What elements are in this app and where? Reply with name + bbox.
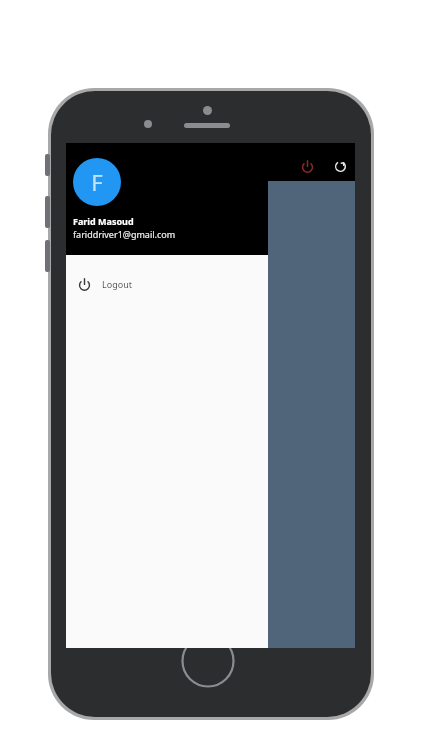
button[interactable]: Refresh: [327, 153, 353, 179]
staticText: Logout: [102, 278, 132, 290]
button[interactable]: Power off: [294, 153, 320, 179]
staticText: fariddriver1@gmail.com: [73, 228, 176, 240]
button[interactable]: Logout: [66, 267, 268, 301]
staticText: F: [91, 167, 103, 197]
staticText: Farid Masoud: [73, 215, 134, 227]
